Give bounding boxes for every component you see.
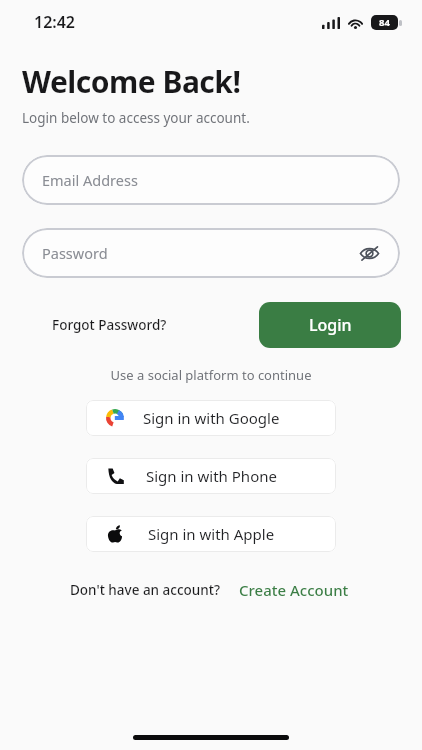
staticText: Sign in with Apple	[148, 524, 275, 544]
button[interactable]: Password	[22, 228, 400, 278]
staticText: Use a social platform to continue	[0, 366, 422, 384]
button[interactable]: Email Address	[22, 155, 400, 205]
staticText: 12:42	[34, 11, 76, 33]
staticText: Login	[309, 314, 352, 336]
staticText: 84	[379, 16, 390, 29]
button[interactable]: Sign in with Apple	[86, 516, 336, 552]
button[interactable]: Show password	[354, 238, 384, 268]
staticText: Password	[42, 243, 108, 263]
staticText: Email Address	[42, 170, 138, 190]
staticText: Create Account	[239, 580, 349, 600]
staticText: Don't have an account?	[70, 581, 220, 599]
staticText: Login below to access your account.	[22, 109, 250, 127]
button[interactable]: Create Account	[236, 574, 352, 606]
button[interactable]: Sign in with Phone	[86, 458, 336, 494]
button[interactable]: Forgot Password?	[22, 306, 197, 344]
staticText: Sign in with Google	[143, 408, 280, 428]
button[interactable]: Login	[259, 302, 401, 348]
button[interactable]: Sign in with Google	[86, 400, 336, 436]
staticText: Sign in with Phone	[146, 466, 277, 486]
staticText: Welcome Back!	[22, 61, 241, 102]
staticText: Forgot Password?	[52, 316, 167, 334]
